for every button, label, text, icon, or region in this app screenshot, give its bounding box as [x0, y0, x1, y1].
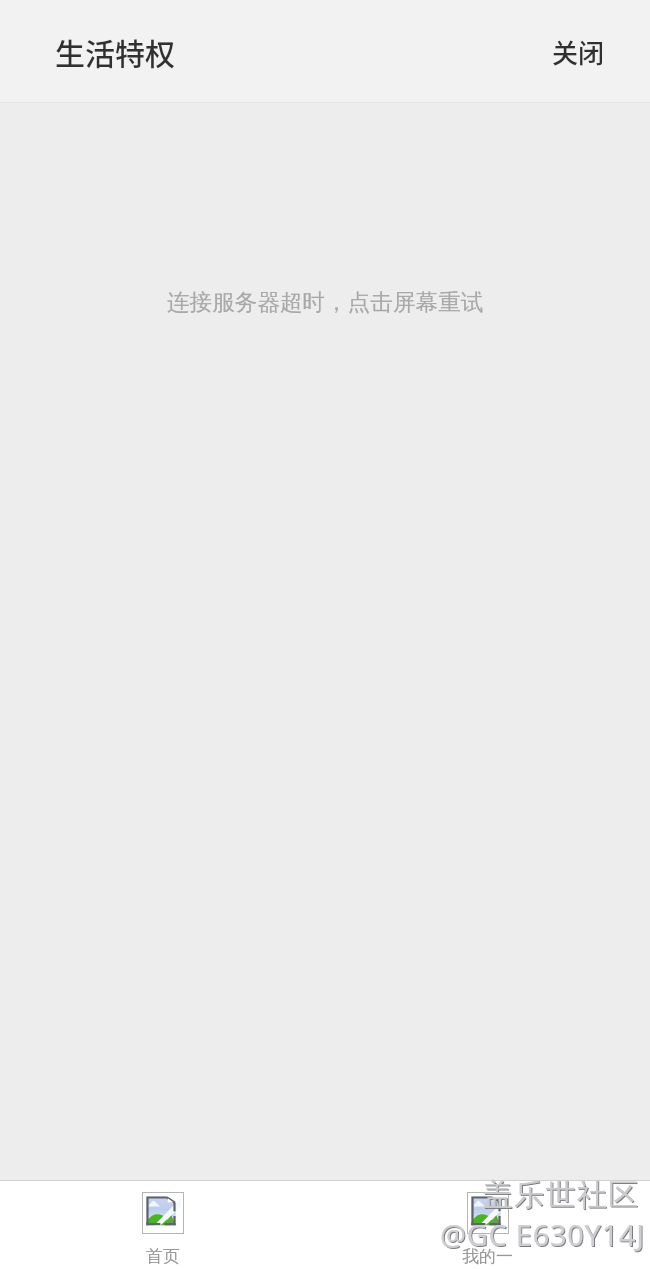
- staticText: 生活特权: [55, 30, 175, 73]
- staticText: 首页: [146, 1246, 180, 1267]
- button[interactable]: 关闭: [507, 14, 650, 88]
- staticText: 盖乐世社区: [483, 1177, 640, 1215]
- staticText: 盖乐世社区: [482, 1176, 639, 1214]
- staticText: 我的一: [462, 1246, 513, 1267]
- staticText: @GC E630Y14J: [440, 1215, 645, 1254]
- button[interactable]: 连接服务器超时，点击屏幕重试: [0, 103, 650, 1180]
- staticText: 关闭: [552, 33, 605, 71]
- staticText: @GC E630Y14J: [441, 1216, 646, 1255]
- other: Image: [467, 1192, 509, 1234]
- staticText: 连接服务器超时，点击屏幕重试: [167, 288, 484, 316]
- other: Image: [142, 1192, 184, 1234]
- button[interactable]: 首页: [0, 1181, 325, 1269]
- button[interactable]: 我的一: [325, 1181, 650, 1269]
